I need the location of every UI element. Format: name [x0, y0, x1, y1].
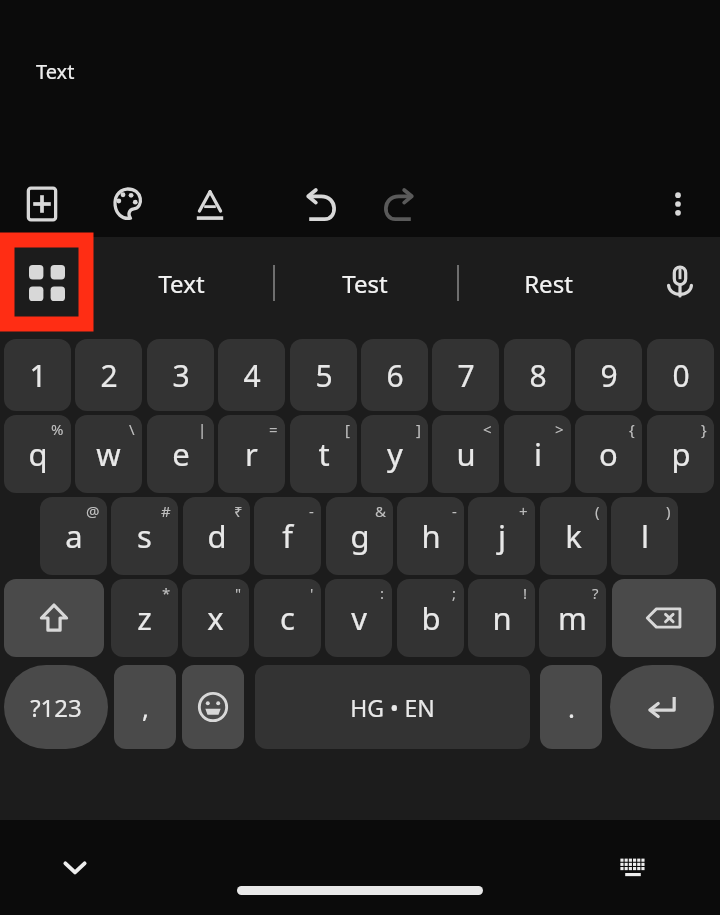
button[interactable]: . — [540, 665, 602, 749]
staticText: ?123 — [30, 691, 82, 724]
button[interactable]: Undo — [286, 170, 350, 237]
button[interactable]: Redo — [370, 170, 434, 237]
button[interactable]: 1 — [4, 339, 71, 411]
button[interactable]: 8 — [504, 339, 571, 411]
button[interactable]: a — [40, 497, 107, 575]
staticText: f — [282, 515, 293, 557]
button[interactable]: , — [114, 665, 176, 749]
staticText: * — [162, 583, 171, 603]
button[interactable]: Text — [90, 237, 273, 329]
button[interactable]: Enter — [610, 665, 714, 749]
staticText: n — [492, 597, 512, 639]
staticText: 4 — [243, 355, 261, 396]
button[interactable]: q — [4, 415, 71, 493]
button[interactable]: z — [111, 579, 178, 657]
button[interactable]: g — [326, 497, 393, 575]
button[interactable]: 0 — [647, 339, 714, 411]
staticText: { — [629, 419, 635, 439]
staticText: 5 — [315, 355, 333, 396]
staticText: ] — [416, 419, 421, 439]
staticText: - — [309, 501, 314, 521]
button[interactable]: Test — [273, 237, 456, 329]
button[interactable]: i — [504, 415, 571, 493]
staticText: ' — [310, 583, 314, 603]
button[interactable]: d — [183, 497, 250, 575]
staticText: 2 — [100, 355, 118, 396]
button[interactable]: 4 — [218, 339, 285, 411]
staticText: x — [207, 597, 224, 639]
staticText: y — [387, 433, 403, 475]
staticText: @ — [86, 501, 100, 521]
button[interactable]: Hide keyboard — [42, 834, 108, 900]
staticText: HG • EN — [350, 692, 435, 723]
staticText: m — [558, 597, 587, 639]
staticText: > — [555, 419, 564, 439]
button[interactable]: More options — [646, 170, 710, 237]
staticText: o — [599, 433, 618, 475]
button[interactable]: ?123 — [4, 665, 108, 749]
staticText: l — [641, 515, 649, 557]
staticText: s — [137, 515, 152, 557]
staticText: 9 — [600, 355, 618, 396]
button[interactable]: 7 — [432, 339, 499, 411]
button[interactable]: v — [325, 579, 392, 657]
button[interactable]: 5 — [290, 339, 357, 411]
button[interactable]: w — [75, 415, 142, 493]
button[interactable]: u — [432, 415, 499, 493]
staticText: ! — [523, 583, 528, 603]
staticText: u — [456, 433, 476, 475]
button[interactable]: n — [468, 579, 535, 657]
button[interactable]: f — [254, 497, 321, 575]
button[interactable]: 9 — [575, 339, 642, 411]
button[interactable]: Change keyboard — [600, 834, 666, 900]
button[interactable]: Text format — [178, 170, 242, 237]
staticText: # — [161, 501, 171, 521]
button[interactable]: e — [147, 415, 214, 493]
staticText: } — [701, 419, 707, 439]
button[interactable]: Shift — [4, 579, 104, 657]
button[interactable]: Toolbar apps — [3, 237, 90, 329]
button[interactable]: Backspace — [612, 579, 716, 657]
button[interactable]: s — [111, 497, 178, 575]
button[interactable]: HG • EN — [255, 665, 530, 749]
button[interactable]: m — [539, 579, 606, 657]
button[interactable]: Voice input — [640, 237, 720, 329]
staticText: Text — [36, 58, 75, 85]
button[interactable]: o — [575, 415, 642, 493]
staticText: - — [452, 501, 457, 521]
staticText: w — [96, 433, 121, 475]
button[interactable]: 3 — [147, 339, 214, 411]
button[interactable]: y — [361, 415, 428, 493]
staticText: a — [65, 515, 83, 557]
button[interactable]: h — [397, 497, 464, 575]
button[interactable]: l — [611, 497, 678, 575]
button[interactable]: Emoji — [182, 665, 244, 749]
staticText: ₹ — [234, 501, 243, 521]
staticText: 0 — [672, 355, 690, 396]
button[interactable]: k — [540, 497, 607, 575]
staticText: ) — [666, 501, 671, 521]
button[interactable]: p — [647, 415, 714, 493]
staticText: r — [245, 433, 258, 475]
staticText: g — [350, 515, 370, 557]
button[interactable]: Color palette — [94, 170, 158, 237]
button[interactable]: c — [254, 579, 321, 657]
staticText: | — [198, 419, 207, 439]
button[interactable]: r — [218, 415, 285, 493]
staticText: j — [498, 515, 506, 557]
staticText: 1 — [29, 355, 47, 396]
staticText: d — [207, 515, 227, 557]
button[interactable]: 2 — [75, 339, 142, 411]
button[interactable]: j — [468, 497, 535, 575]
button[interactable]: Rest — [457, 237, 640, 329]
button[interactable]: t — [290, 415, 357, 493]
staticText: & — [375, 501, 386, 521]
staticText: 3 — [172, 355, 190, 396]
button[interactable]: 6 — [361, 339, 428, 411]
staticText: c — [280, 597, 295, 639]
staticText: p — [671, 433, 691, 475]
button[interactable]: Insert — [10, 170, 74, 237]
staticText: 6 — [386, 355, 404, 396]
button[interactable]: b — [397, 579, 464, 657]
button[interactable]: x — [182, 579, 249, 657]
